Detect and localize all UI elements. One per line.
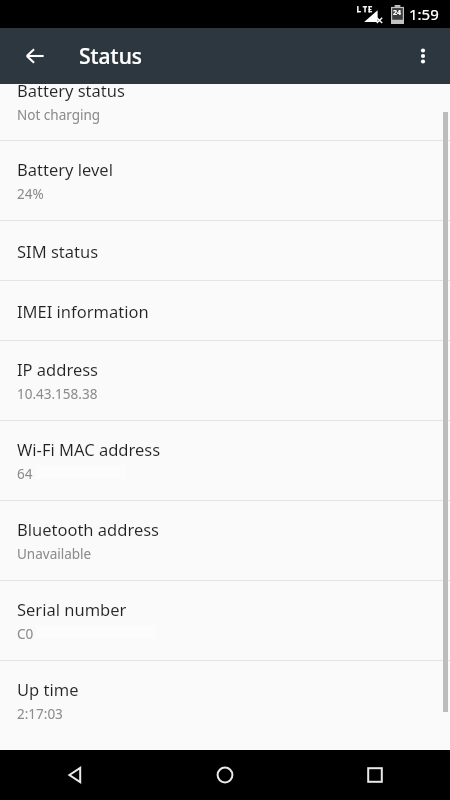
staticText: C0 — [17, 625, 34, 643]
staticText: Unavailable — [17, 545, 92, 563]
staticText: Wi-Fi MAC address — [17, 438, 161, 460]
staticText: 64 — [17, 465, 33, 483]
button[interactable]: IMEI information — [0, 281, 450, 340]
button[interactable]: Serial number — [0, 581, 450, 660]
staticText: 10.43.158.38 — [17, 385, 98, 403]
button[interactable]: Battery level — [0, 141, 450, 220]
staticText: Serial number — [17, 598, 127, 620]
staticText: 24% — [17, 185, 44, 203]
staticText: Not charging — [17, 106, 101, 124]
button[interactable]: Back — [0, 750, 150, 800]
staticText: Battery status — [17, 79, 125, 101]
button[interactable]: Recent apps — [300, 750, 450, 800]
staticText: Status — [79, 42, 143, 71]
button[interactable]: Battery status — [0, 84, 450, 140]
button[interactable]: Home — [150, 750, 300, 800]
staticText: Battery level — [17, 158, 113, 180]
staticText: Bluetooth address — [17, 518, 159, 540]
staticText: 1:59 — [409, 4, 439, 24]
button[interactable]: Bluetooth address — [0, 501, 450, 580]
staticText: 2:17:03 — [17, 705, 63, 723]
button[interactable]: Navigate up — [11, 32, 59, 80]
staticText: 24 — [393, 8, 402, 18]
button[interactable]: SIM status — [0, 221, 450, 280]
staticText: IP address — [17, 358, 99, 380]
button[interactable]: More options — [399, 32, 447, 80]
button[interactable]: IP address — [0, 341, 450, 420]
button[interactable]: Wi-Fi MAC address — [0, 421, 450, 500]
button[interactable]: Up time — [0, 661, 450, 740]
staticText: SIM status — [17, 240, 99, 262]
staticText: IMEI information — [17, 300, 149, 322]
staticText: Up time — [17, 678, 79, 700]
